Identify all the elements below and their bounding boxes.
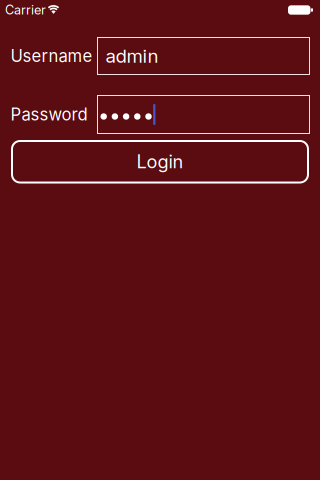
staticText: Username — [10, 46, 92, 66]
staticText: Carrier — [5, 2, 46, 18]
staticText: admin — [105, 45, 158, 67]
button[interactable]: Password text field — [97, 95, 309, 133]
staticText: Password — [10, 104, 87, 125]
staticText: Login — [136, 151, 183, 173]
button[interactable]: Username text field — [97, 37, 309, 74]
button[interactable]: Login — [12, 141, 308, 182]
